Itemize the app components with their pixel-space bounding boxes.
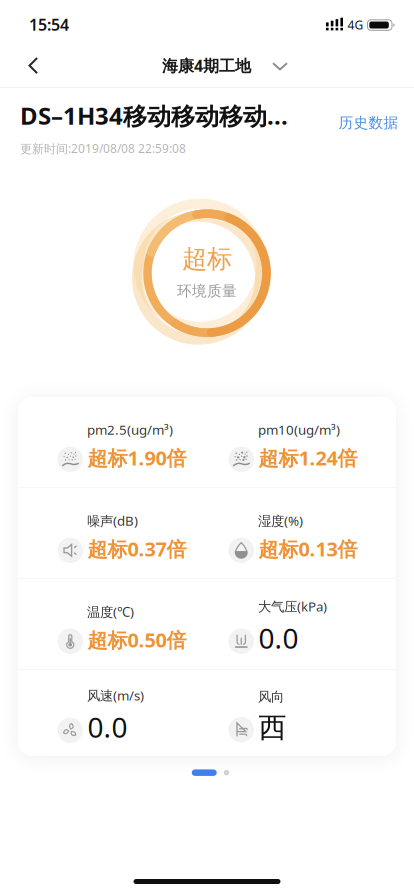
- staticText: 环境质量: [177, 282, 237, 300]
- staticText: 4G: [347, 17, 363, 33]
- staticText: 历史数据: [338, 114, 398, 132]
- staticText: 超标0.13倍: [258, 535, 357, 562]
- staticText: 超标: [182, 244, 232, 275]
- staticText: pm10(ug/m³): [258, 421, 340, 438]
- button[interactable]: 切换工地: [162, 44, 288, 87]
- staticText: 超标1.90倍: [87, 444, 186, 471]
- staticText: 超标0.50倍: [87, 626, 186, 653]
- staticText: 超标0.37倍: [87, 535, 186, 562]
- staticText: 湿度(%): [258, 512, 303, 529]
- staticText: 0.0: [258, 619, 298, 656]
- staticText: 风速(m/s): [87, 686, 144, 704]
- button[interactable]: 第1页: [192, 769, 217, 776]
- button[interactable]: 第2页: [224, 770, 229, 775]
- staticText: 超标1.24倍: [258, 444, 357, 471]
- staticText: DS–1H34移动移动移动...: [20, 99, 288, 131]
- staticText: 风向: [258, 688, 284, 705]
- button[interactable]: 返回: [0, 44, 50, 87]
- staticText: 大气压(kPa): [258, 597, 327, 615]
- button[interactable]: 历史数据: [338, 113, 398, 131]
- staticText: 15:54: [29, 14, 69, 35]
- staticText: 温度(℃): [87, 603, 134, 620]
- staticText: 噪声(dB): [87, 512, 138, 529]
- staticText: 西: [258, 710, 286, 745]
- staticText: 更新时间:2019/08/08 22:59:08: [20, 140, 186, 156]
- staticText: 海康4期工地: [162, 55, 251, 76]
- staticText: pm2.5(ug/m³): [87, 421, 173, 438]
- staticText: 0.0: [87, 708, 127, 745]
